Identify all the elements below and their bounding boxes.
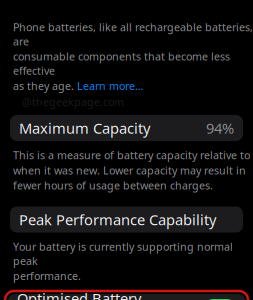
staticText: as they age. (13, 79, 74, 93)
staticText: Phone batteries, like all rechargeable b… (13, 20, 253, 48)
staticText: fewer hours of usage between charges. (13, 178, 213, 192)
staticText: This is a measure of battery capacity re… (13, 148, 250, 162)
button[interactable]: Maximum Capacity (10, 115, 243, 141)
staticText: Optimised Battery Charging (17, 288, 141, 300)
staticText: Your battery is currently supporting nor… (13, 239, 233, 268)
staticText: consumable components that become less e… (13, 49, 230, 78)
staticText: 94% (206, 118, 234, 138)
staticText: when it was new. Lower capacity may resu… (13, 163, 246, 177)
button[interactable]: Optimised Battery Charging (5, 291, 248, 300)
staticText: performance. (13, 269, 81, 283)
staticText: @thegeekpage.com (22, 95, 124, 109)
staticText: Learn more… (77, 79, 143, 93)
button[interactable]: Peak Performance Capability (10, 206, 243, 232)
button[interactable]: Learn more… (77, 79, 143, 93)
staticText: Maximum Capacity (19, 118, 150, 138)
staticText: Peak Performance Capability (19, 210, 216, 229)
